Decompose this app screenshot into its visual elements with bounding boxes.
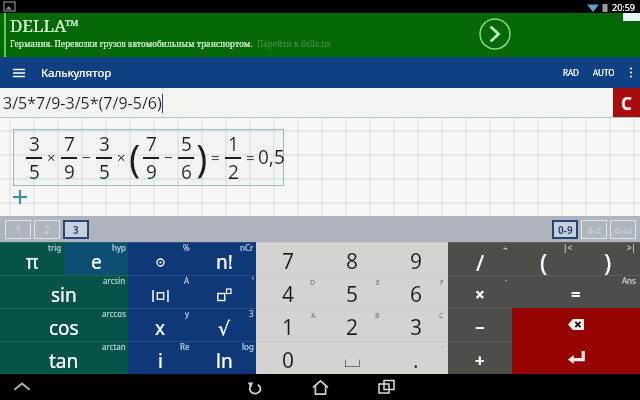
button[interactable]: y	[128, 308, 192, 341]
staticText: 0-9	[558, 223, 573, 237]
button[interactable]: C	[384, 308, 448, 341]
staticText: n!	[216, 249, 233, 275]
staticText: 0,5	[258, 144, 285, 170]
staticText: ÷	[503, 242, 508, 253]
button[interactable]: hyp	[64, 242, 128, 275]
staticText: sin	[51, 282, 77, 308]
staticText: 3	[410, 313, 423, 342]
button[interactable]: ⌴	[320, 341, 384, 374]
staticText: hyp	[112, 242, 126, 253]
staticText: ×	[47, 147, 56, 167]
button[interactable]: Recents	[353, 375, 419, 399]
staticText: ×	[475, 283, 485, 306]
button[interactable]: More options	[622, 57, 640, 88]
staticText: >|	[627, 242, 636, 253]
button[interactable]: 9	[384, 242, 448, 275]
button[interactable]: |<	[512, 242, 576, 275]
staticText: 2	[228, 159, 239, 183]
staticText: e	[91, 249, 102, 275]
button[interactable]: trig	[0, 242, 64, 275]
button[interactable]: arccos	[0, 308, 128, 341]
button[interactable]: Menu	[7, 61, 31, 85]
button[interactable]: D	[256, 275, 320, 308]
button[interactable]: Collapse	[12, 377, 32, 397]
button[interactable]: 3	[63, 220, 89, 239]
staticText: A	[311, 311, 316, 321]
button[interactable]: +	[448, 341, 512, 374]
staticText: Калькулятор	[41, 65, 112, 81]
button[interactable]: 8	[320, 242, 384, 275]
button[interactable]: %	[128, 242, 192, 275]
button[interactable]: C	[613, 88, 640, 118]
button[interactable]: Enter	[512, 341, 640, 374]
button[interactable]: F	[384, 275, 448, 308]
button[interactable]: E	[320, 275, 384, 308]
button[interactable]: Home	[287, 375, 353, 399]
staticText: (	[129, 131, 141, 183]
button[interactable]: arcsin	[0, 275, 128, 308]
staticText: ln	[216, 348, 233, 374]
staticText: DELLA™	[10, 14, 80, 37]
button[interactable]: a-z	[581, 220, 607, 239]
staticText: +	[475, 349, 485, 372]
button[interactable]: nCr	[192, 242, 256, 275]
button[interactable]: 0	[256, 341, 320, 374]
button[interactable]: B	[320, 308, 384, 341]
staticText: 1	[15, 223, 21, 237]
staticText: (	[540, 245, 548, 278]
button[interactable]: Ans	[512, 275, 640, 308]
staticText: trig	[48, 242, 62, 253]
staticText: )	[196, 131, 208, 183]
button[interactable]: Backspace	[512, 308, 640, 341]
button[interactable]: Add expression	[13, 190, 27, 204]
staticText: =	[211, 147, 220, 167]
button[interactable]: ·	[448, 275, 512, 308]
button[interactable]: 0-9	[552, 220, 578, 239]
button[interactable]: 1	[5, 220, 31, 239]
staticText: log	[242, 341, 254, 352]
staticText: %	[183, 242, 190, 253]
staticText: y	[185, 308, 190, 319]
button[interactable]: '	[384, 341, 448, 374]
staticText: 20:59	[612, 1, 636, 13]
button[interactable]: DELLA™	[0, 13, 640, 57]
button[interactable]: Go	[479, 18, 511, 50]
staticText: 5	[99, 159, 110, 183]
button[interactable]: Back	[221, 375, 287, 399]
button[interactable]: −	[448, 308, 512, 341]
staticText: '	[442, 344, 444, 354]
staticText: 9	[146, 159, 157, 183]
staticText: i	[158, 348, 163, 374]
staticText: Ans	[622, 275, 636, 286]
staticText: x	[155, 315, 166, 341]
button[interactable]: Re	[128, 341, 192, 374]
button[interactable]: 2	[34, 220, 60, 239]
button[interactable]: A	[256, 308, 320, 341]
button[interactable]: arctan	[0, 341, 128, 374]
staticText: arccos	[102, 308, 126, 319]
staticText: .	[413, 346, 419, 375]
button[interactable]: α-ω	[610, 220, 636, 239]
staticText: A	[184, 275, 190, 286]
staticText: Перейти в della.ua	[257, 38, 331, 49]
button[interactable]: RAD	[556, 67, 586, 78]
button[interactable]: 3	[192, 308, 256, 341]
staticText: ⌴	[344, 350, 361, 371]
staticText: Re	[180, 341, 190, 352]
button[interactable]: 7	[256, 242, 320, 275]
staticText: 9	[64, 159, 75, 183]
button[interactable]: log	[192, 341, 256, 374]
staticText: −	[475, 316, 485, 339]
button[interactable]: >|	[576, 242, 640, 275]
staticText: E	[376, 278, 380, 288]
staticText: nCr	[240, 242, 254, 253]
staticText: 3	[73, 223, 79, 237]
staticText: '	[252, 275, 254, 286]
staticText: 1	[228, 131, 239, 157]
staticText: 1	[282, 313, 295, 342]
button[interactable]: AUTO	[586, 67, 622, 78]
button[interactable]: '	[192, 275, 256, 308]
staticText: 2	[346, 313, 359, 342]
button[interactable]: ÷	[448, 242, 512, 275]
button[interactable]: A	[128, 275, 192, 308]
